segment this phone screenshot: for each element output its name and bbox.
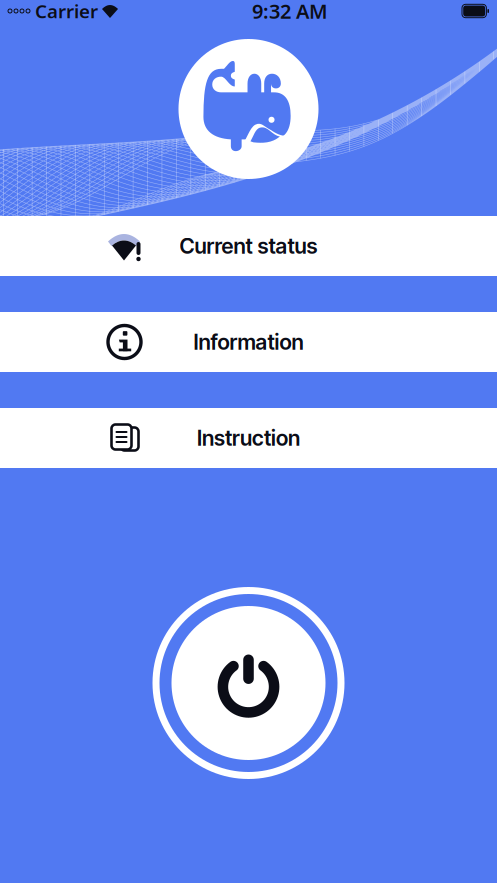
button[interactable]: Instruction [0, 408, 497, 468]
staticText: Carrier [35, 0, 98, 23]
staticText: 9:32 AM [252, 0, 328, 24]
button[interactable]: Current status [0, 216, 497, 276]
staticText: Current status [179, 233, 317, 259]
staticText: Information [193, 329, 303, 355]
staticText: Instruction [197, 425, 300, 451]
button[interactable]: Information [0, 312, 497, 372]
button[interactable]: Power [148, 583, 348, 783]
